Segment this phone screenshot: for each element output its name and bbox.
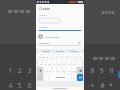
button[interactable]: Enter	[77, 74, 83, 81]
staticText: ?123	[38, 77, 42, 79]
staticText: Create	[39, 6, 50, 11]
button[interactable]: k	[72, 60, 76, 67]
button[interactable]: Add reminder	[39, 35, 81, 38]
staticText: w	[42, 55, 44, 58]
staticText: j	[69, 62, 70, 65]
button[interactable]: Shift	[37, 67, 43, 74]
staticText: c	[53, 69, 55, 72]
button[interactable]: j	[67, 60, 71, 67]
staticText: 4	[8, 81, 13, 90]
button[interactable]: i	[69, 53, 73, 60]
button[interactable]: z	[44, 67, 47, 74]
button[interactable]: r	[49, 53, 53, 60]
button[interactable]: h	[62, 60, 66, 67]
staticText: .	[74, 76, 75, 79]
staticText: 0	[109, 66, 114, 76]
staticText: x	[49, 69, 51, 72]
button[interactable]: q	[37, 53, 40, 60]
staticText: h	[63, 62, 65, 65]
staticText: 3	[27, 66, 32, 76]
staticText: Category	[39, 41, 50, 44]
button[interactable]: Category	[39, 41, 81, 46]
staticText: e	[46, 55, 48, 58]
button[interactable]: n	[67, 67, 71, 74]
staticText: 5	[17, 81, 22, 90]
staticText: Add reminder	[44, 35, 60, 38]
staticText: k	[73, 62, 75, 65]
button[interactable]: v	[57, 67, 61, 74]
button[interactable]: o	[74, 53, 78, 60]
staticText: ,	[46, 76, 47, 79]
button[interactable]: f	[52, 60, 56, 67]
staticText: u	[65, 55, 67, 58]
staticText: +	[90, 81, 95, 90]
staticText: 8	[90, 66, 95, 76]
button[interactable]: Space	[49, 74, 71, 81]
button[interactable]	[41, 51, 51, 52]
button[interactable]: m	[72, 67, 76, 74]
staticText: v	[58, 69, 60, 72]
staticText: #	[100, 81, 105, 90]
button[interactable]: p	[79, 53, 83, 60]
staticText: 2	[17, 66, 22, 76]
other: Expand category	[78, 41, 81, 44]
staticText: 9	[99, 66, 104, 76]
button[interactable]: s	[43, 60, 46, 67]
button[interactable]: a	[39, 60, 42, 67]
button[interactable]: w	[41, 53, 44, 60]
staticText: i	[71, 55, 72, 58]
staticText: t	[56, 55, 57, 58]
button[interactable]: Name	[39, 14, 81, 23]
staticText: d	[48, 62, 50, 65]
staticText: *	[109, 81, 113, 90]
button[interactable]: b	[62, 67, 66, 74]
staticText: n	[68, 69, 70, 72]
button[interactable]: y	[59, 53, 63, 60]
staticText: q	[38, 55, 40, 58]
staticText: b	[63, 69, 65, 72]
staticText: Name	[39, 14, 46, 17]
button[interactable]: Backspace	[77, 67, 83, 74]
staticText: l	[79, 62, 80, 65]
button[interactable]: l	[77, 60, 81, 67]
button[interactable]: u	[64, 53, 68, 60]
button[interactable]: c	[52, 67, 56, 74]
staticText: r	[51, 55, 52, 58]
staticText: z	[45, 69, 47, 72]
staticText: o	[75, 55, 77, 58]
button[interactable]: Symbols	[37, 74, 43, 81]
staticText: y	[60, 55, 62, 58]
staticText: m	[73, 69, 76, 72]
staticText: f	[54, 62, 55, 65]
staticText: 1	[8, 66, 13, 76]
button[interactable]: Amount	[39, 26, 81, 31]
staticText: Amount	[39, 26, 48, 29]
button[interactable]	[69, 51, 79, 52]
staticText: a	[40, 62, 42, 65]
button[interactable]: g	[57, 60, 61, 67]
button[interactable]: x	[48, 67, 51, 74]
staticText: 6	[27, 81, 32, 90]
button[interactable]: e	[45, 53, 48, 60]
button[interactable]: d	[47, 60, 51, 67]
button[interactable]: t	[54, 53, 58, 60]
staticText: g	[58, 62, 60, 65]
staticText: s	[44, 62, 46, 65]
staticText: p	[80, 55, 82, 58]
button[interactable]	[55, 51, 65, 52]
